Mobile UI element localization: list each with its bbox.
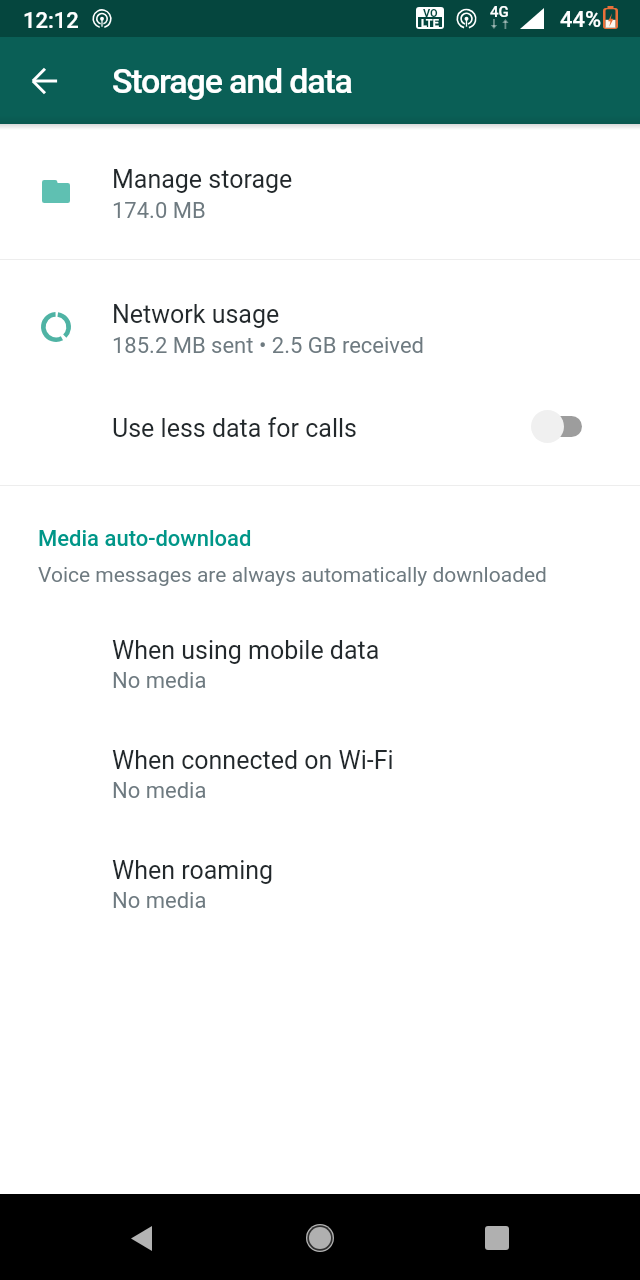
- button[interactable]: Use less data for calls: [0, 382, 640, 485]
- staticText: 185.2 MB sent • 2.5 GB received: [112, 333, 424, 359]
- button[interactable]: Manage storage: [0, 124, 640, 259]
- staticText: 174.0 MB: [112, 198, 206, 224]
- staticText: No media: [112, 668, 207, 694]
- button[interactable]: Navigate up: [8, 37, 80, 124]
- button[interactable]: When roaming: [0, 842, 640, 936]
- staticText: No media: [112, 888, 207, 914]
- staticText: Network usage: [112, 300, 280, 329]
- staticText: Storage and data: [112, 61, 352, 101]
- staticText: Manage storage: [112, 165, 293, 194]
- button[interactable]: Home: [280, 1198, 360, 1278]
- button[interactable]: Use less data for calls: [531, 409, 587, 443]
- staticText: When roaming: [112, 856, 274, 885]
- staticText: When connected on Wi-Fi: [112, 746, 394, 775]
- staticText: Use less data for calls: [112, 414, 357, 443]
- button[interactable]: When connected on Wi-Fi: [0, 732, 640, 826]
- staticText: Voice messages are always automatically …: [38, 563, 547, 588]
- staticText: Media auto-download: [38, 526, 252, 552]
- staticText: 12:12: [23, 8, 79, 34]
- staticText: No media: [112, 778, 207, 804]
- button[interactable]: Network usage: [0, 260, 640, 372]
- staticText: 44%: [560, 7, 602, 33]
- staticText: VO: [423, 7, 438, 17]
- button[interactable]: When using mobile data: [0, 622, 640, 716]
- staticText: When using mobile data: [112, 636, 380, 665]
- staticText: LTE: [421, 17, 439, 27]
- button[interactable]: Recent apps: [457, 1198, 537, 1278]
- button[interactable]: Back: [101, 1198, 181, 1278]
- staticText: 4G: [490, 3, 509, 21]
